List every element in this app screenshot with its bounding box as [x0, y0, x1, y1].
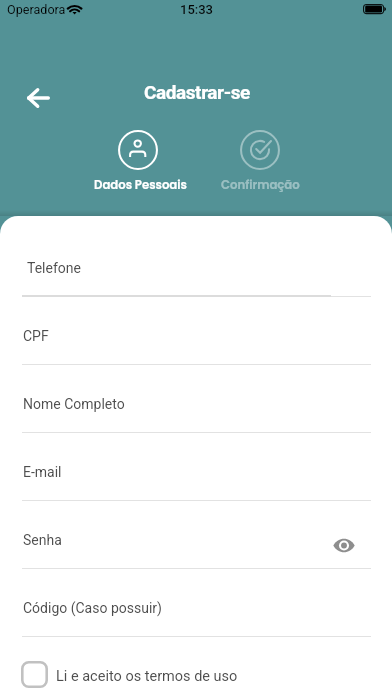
- button[interactable]: Código (Caso possuir): [0, 569, 392, 637]
- button[interactable]: Telefone: [0, 229, 392, 297]
- button[interactable]: Mostrar senha: [333, 538, 355, 553]
- button[interactable]: CPF: [0, 297, 392, 365]
- staticText: Código (Caso possuir): [23, 600, 162, 616]
- button[interactable]: Li e aceito os termos de uso: [0, 648, 392, 696]
- staticText: Dados Pessoais: [94, 177, 187, 193]
- staticText: Operadora: [7, 2, 66, 17]
- button[interactable]: Voltar: [27, 89, 50, 107]
- staticText: Telefone: [27, 260, 81, 276]
- button[interactable]: Nome Completo: [0, 365, 392, 433]
- staticText: Nome Completo: [23, 396, 125, 412]
- button[interactable]: E-mail: [0, 433, 392, 501]
- staticText: CPF: [23, 328, 49, 344]
- button[interactable]: Dados Pessoais: [77, 130, 199, 193]
- button[interactable]: Senha: [0, 501, 392, 569]
- staticText: Confirmação: [221, 177, 300, 193]
- staticText: E-mail: [23, 464, 62, 480]
- staticText: Senha: [23, 532, 62, 548]
- staticText: Cadastrar-se: [144, 81, 250, 103]
- staticText: 15:33: [180, 2, 213, 17]
- button[interactable]: Confirmação: [199, 130, 321, 193]
- staticText: Li e aceito os termos de uso: [56, 668, 238, 685]
